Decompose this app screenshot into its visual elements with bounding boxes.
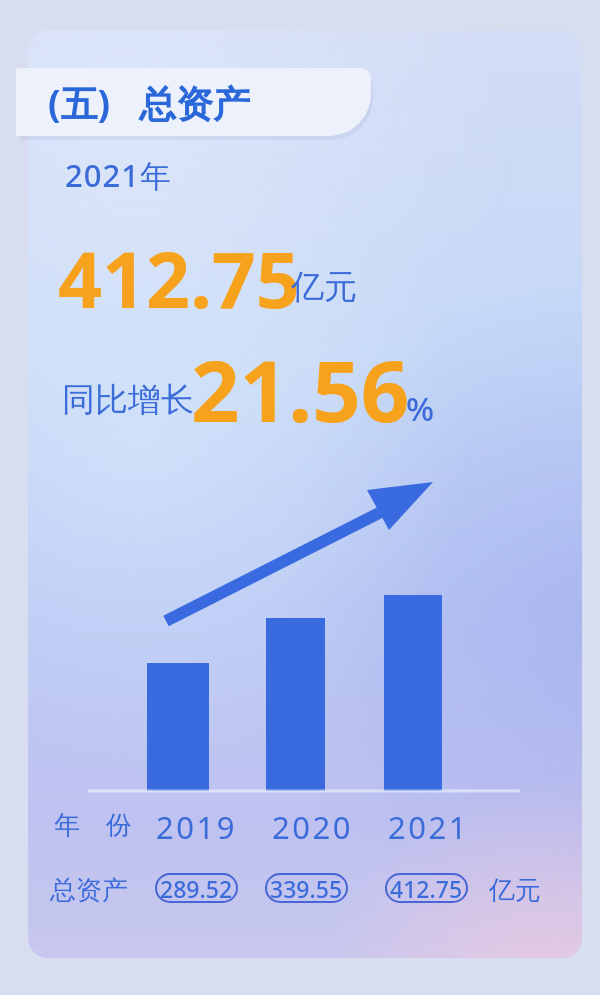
- staticText: 21.56: [191, 331, 410, 447]
- staticText: 2021: [388, 806, 469, 848]
- button[interactable]: (五) 总资产: [16, 68, 371, 136]
- staticText: 412.75: [390, 873, 463, 903]
- button[interactable]: 339.55: [265, 873, 348, 903]
- button[interactable]: 412.75: [385, 873, 468, 903]
- staticText: 总资产: [50, 874, 128, 907]
- staticText: 亿元: [291, 266, 357, 308]
- button[interactable]: 289.52: [155, 873, 238, 903]
- staticText: 412.75: [58, 226, 300, 331]
- staticText: 339.55: [270, 873, 343, 903]
- staticText: 2019: [156, 806, 237, 848]
- staticText: (五) 总资产: [48, 77, 250, 128]
- staticText: 289.52: [160, 873, 233, 903]
- staticText: 年 份: [54, 806, 132, 842]
- staticText: 亿元: [489, 874, 541, 907]
- staticText: 2020: [272, 806, 353, 848]
- staticText: 2021年: [65, 154, 172, 196]
- staticText: %: [406, 386, 435, 431]
- staticText: 同比增长: [62, 379, 194, 421]
